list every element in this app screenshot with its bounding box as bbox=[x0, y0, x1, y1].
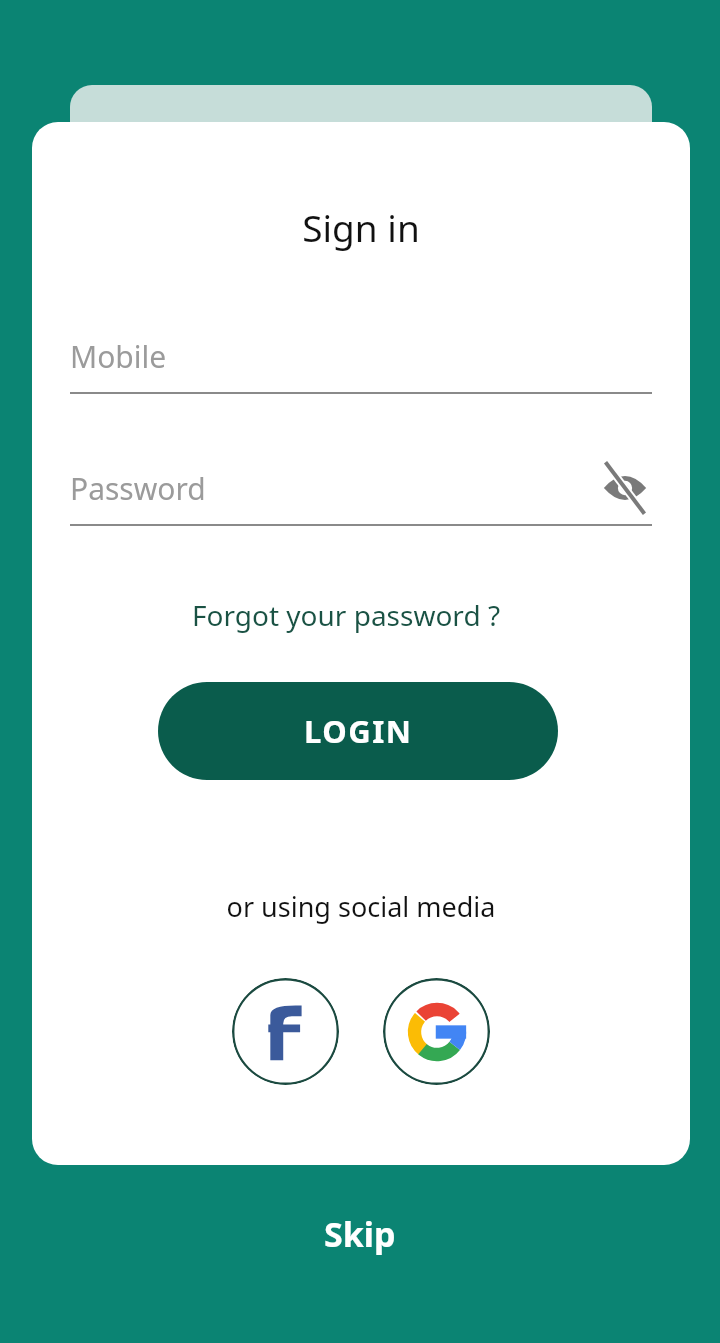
button[interactable]: Sign in with Google bbox=[383, 978, 490, 1085]
button[interactable]: LOGIN bbox=[158, 682, 558, 780]
staticText: or using social media bbox=[32, 888, 690, 925]
button[interactable]: Skip bbox=[284, 1203, 436, 1265]
button[interactable]: Sign in with Facebook bbox=[232, 978, 339, 1085]
button[interactable]: Show password bbox=[598, 462, 652, 514]
staticText: Mobile bbox=[70, 336, 167, 377]
button[interactable]: Mobile bbox=[70, 330, 652, 394]
staticText: LOGIN bbox=[304, 710, 413, 752]
staticText: Sign in bbox=[32, 202, 690, 252]
staticText: Skip bbox=[324, 1211, 396, 1257]
button[interactable]: Password bbox=[70, 462, 652, 526]
button[interactable]: Forgot your password ? bbox=[32, 596, 690, 634]
staticText: Password bbox=[70, 468, 206, 509]
staticText: Forgot your password ? bbox=[192, 596, 501, 634]
